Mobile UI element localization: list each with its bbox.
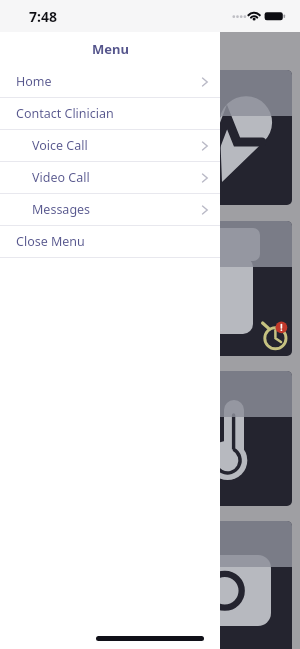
button[interactable]: Medication [8, 221, 292, 356]
staticText: Messages [32, 201, 91, 218]
button[interactable]: Messages [0, 194, 220, 225]
button[interactable]: Close Menu [0, 226, 220, 257]
staticText: Close Menu [16, 233, 85, 250]
staticText: Contact Clinician [16, 105, 114, 122]
staticText: Video Call [32, 169, 90, 186]
button[interactable]: Home [0, 66, 220, 97]
button[interactable]: Temperature [8, 371, 292, 506]
staticText: Voice Call [32, 137, 88, 154]
staticText: Menu [92, 40, 129, 58]
button[interactable]: Voice Call [0, 130, 220, 161]
button[interactable]: Video Call [0, 162, 220, 193]
staticText: 7:48 [29, 7, 57, 26]
button[interactable]: Imaging [8, 521, 292, 649]
staticText: Medication [22, 234, 106, 254]
button[interactable]: Blood Pressure [8, 70, 292, 205]
button[interactable]: Contact Clinician [0, 98, 220, 129]
staticText: Home [16, 73, 52, 90]
staticText: Blood Pressure [22, 83, 134, 103]
